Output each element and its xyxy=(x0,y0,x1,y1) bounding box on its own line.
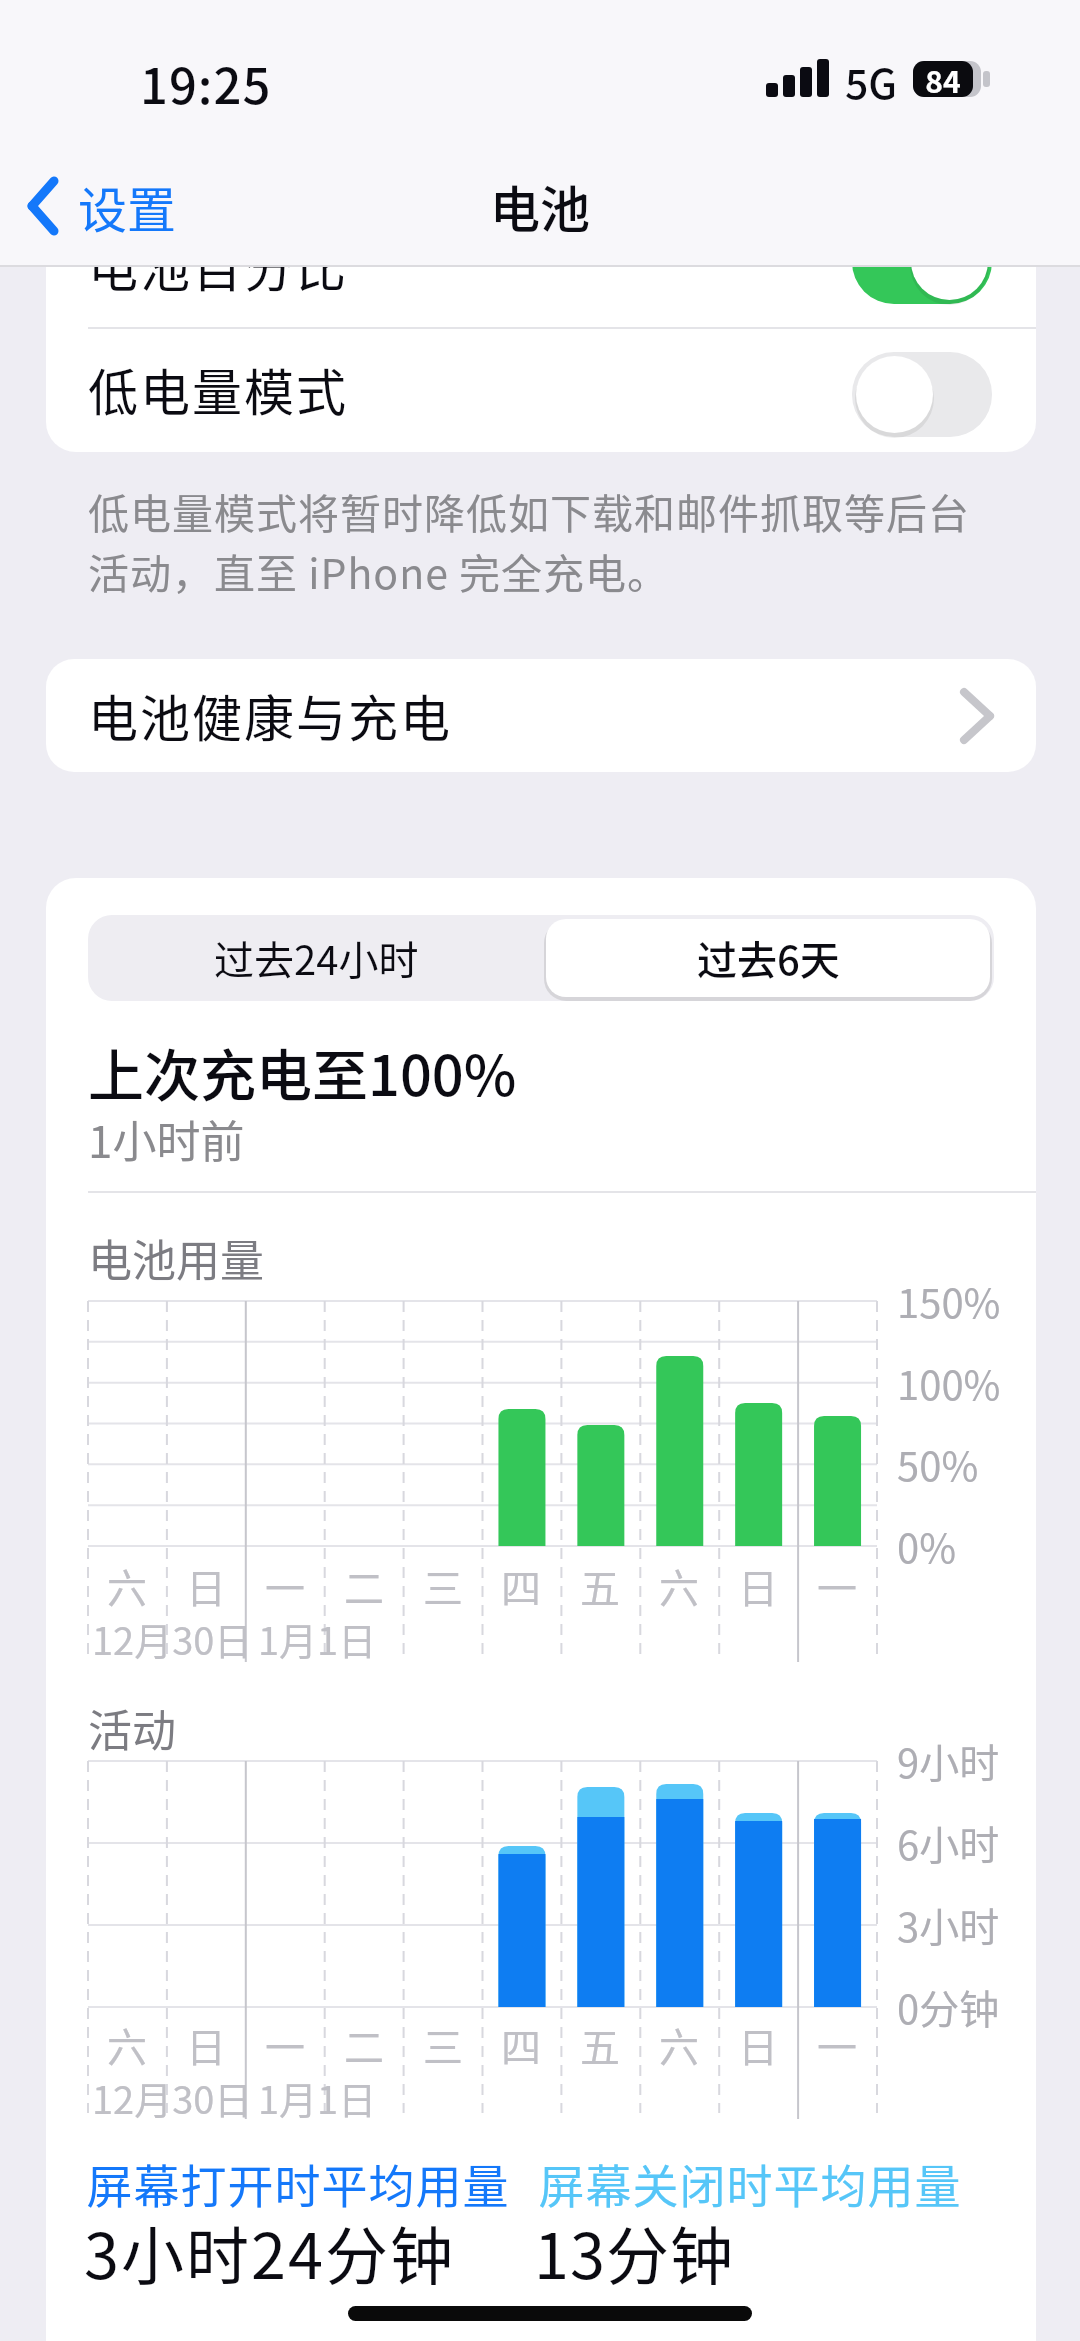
staticText: 电池百分比 xyxy=(88,229,348,301)
staticText: 13分钟 xyxy=(534,2206,734,2297)
staticText: 50% xyxy=(897,1435,979,1493)
staticText: 低电量模式 xyxy=(88,353,348,425)
button[interactable]: 过去24小时 xyxy=(88,915,544,1001)
staticText: 六 xyxy=(659,2016,699,2074)
staticText: 1月1日 xyxy=(258,1611,377,1666)
staticText: 五 xyxy=(580,2016,620,2074)
staticText: 二 xyxy=(344,1557,384,1615)
staticText: 六 xyxy=(659,1557,699,1615)
staticText: 活动，直至 iPhone 完全充电。 xyxy=(88,541,670,600)
staticText: 12月30日 xyxy=(92,2070,253,2125)
staticText: 电池健康与充电 xyxy=(88,679,452,751)
staticText: 四 xyxy=(501,2016,541,2074)
staticText: 五 xyxy=(580,1557,620,1615)
staticText: 上次充电至100% xyxy=(88,1031,517,1112)
staticText: 一 xyxy=(265,2016,305,2074)
staticText: 一 xyxy=(817,2016,857,2074)
button[interactable] xyxy=(852,352,992,437)
staticText: 三 xyxy=(423,2016,463,2074)
staticText: 日 xyxy=(738,1557,778,1615)
staticText: 3小时24分钟 xyxy=(84,2206,455,2297)
staticText: 低电量模式将暂时降低如下载和邮件抓取等后台 xyxy=(88,481,970,540)
button[interactable] xyxy=(46,659,1036,772)
staticText: 日 xyxy=(186,2016,226,2074)
staticText: 过去24小时 xyxy=(214,929,419,987)
staticText: 六 xyxy=(107,2016,147,2074)
staticText: 150% xyxy=(897,1272,1001,1330)
staticText: 5G xyxy=(845,51,898,110)
button[interactable] xyxy=(46,327,1036,452)
staticText: 二 xyxy=(344,2016,384,2074)
button[interactable] xyxy=(20,170,220,242)
staticText: 一 xyxy=(817,1557,857,1615)
staticText: 设置 xyxy=(78,171,177,242)
staticText: 四 xyxy=(501,1557,541,1615)
staticText: 19:25 xyxy=(140,47,272,118)
staticText: 三 xyxy=(423,1557,463,1615)
staticText: 12月30日 xyxy=(92,1611,253,1666)
button[interactable] xyxy=(852,219,992,304)
staticText: 屏幕关闭时平均用量 xyxy=(538,2150,961,2217)
staticText: 0% xyxy=(897,1517,957,1575)
staticText: 活动 xyxy=(88,1696,176,1760)
button[interactable]: 过去6天 xyxy=(546,919,990,997)
staticText: 84 xyxy=(925,58,961,101)
staticText: 日 xyxy=(186,1557,226,1615)
staticText: 100% xyxy=(897,1354,1001,1412)
staticText: 0分钟 xyxy=(897,1978,1000,2036)
staticText: 一 xyxy=(265,1557,305,1615)
staticText: 日 xyxy=(738,2016,778,2074)
staticText: 9小时 xyxy=(897,1732,1000,1790)
staticText: 过去6天 xyxy=(697,929,840,987)
staticText: 6小时 xyxy=(897,1814,1000,1872)
staticText: 电池 xyxy=(490,170,590,242)
staticText: 六 xyxy=(107,1557,147,1615)
staticText: 屏幕打开时平均用量 xyxy=(86,2150,509,2217)
staticText: 1月1日 xyxy=(258,2070,377,2125)
staticText: 1小时前 xyxy=(88,1107,245,1171)
staticText: 3小时 xyxy=(897,1896,1000,1954)
staticText: 电池用量 xyxy=(88,1226,264,1290)
